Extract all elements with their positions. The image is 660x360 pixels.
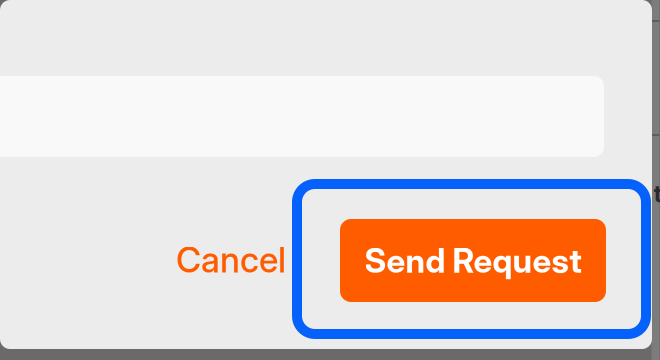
staticText: Send Request [364,240,581,281]
button[interactable]: Send Request [340,219,606,302]
staticText: Cancel [176,239,286,281]
button[interactable]: Cancel [175,238,287,282]
staticText: t [653,179,660,208]
